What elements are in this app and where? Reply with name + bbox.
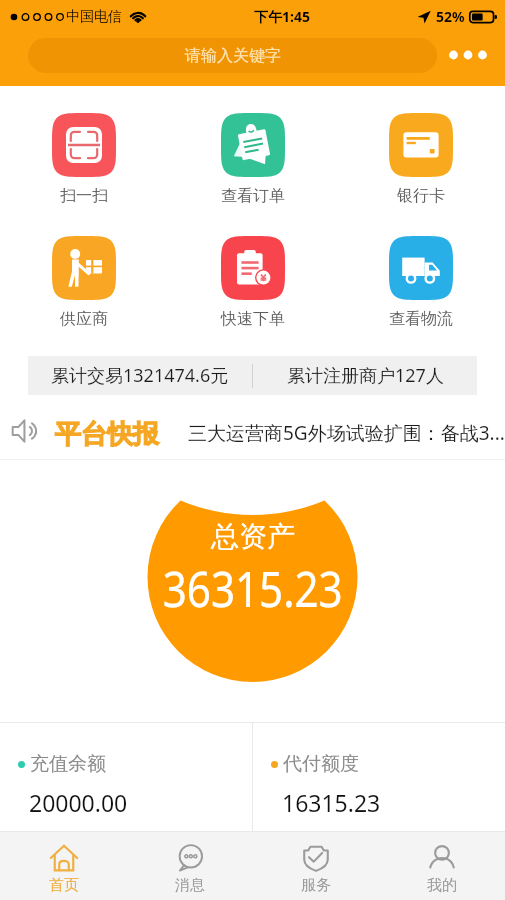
staticText: 下午1:45	[254, 7, 310, 26]
button[interactable]: 充值余额	[0, 723, 252, 831]
staticText: 服务	[301, 876, 331, 895]
staticText: 查看物流	[389, 309, 453, 329]
staticText: 36315.23	[163, 555, 343, 622]
staticText: 平台快报	[55, 418, 159, 451]
button[interactable]: 消息	[127, 832, 253, 900]
button[interactable]: 我的	[379, 832, 505, 900]
button[interactable]: 平台快报	[0, 403, 505, 459]
staticText: 三大运营商5G外场试验扩围：备战3...	[188, 420, 505, 446]
staticText: 查看订单	[221, 186, 285, 206]
button[interactable]	[371, 109, 471, 214]
staticText: 消息	[175, 876, 205, 895]
button[interactable]	[203, 109, 303, 214]
button[interactable]	[371, 232, 471, 337]
staticText: 充值余额	[30, 752, 106, 776]
staticText: 快速下单	[221, 309, 285, 329]
staticText: 代付额度	[283, 752, 359, 776]
staticText: 16315.23	[282, 787, 381, 818]
button[interactable]	[203, 232, 303, 337]
staticText: 银行卡	[397, 186, 445, 206]
staticText: 供应商	[60, 309, 108, 329]
button[interactable]: 服务	[253, 832, 379, 900]
staticText: 52%	[436, 7, 465, 26]
staticText: 我的	[427, 876, 457, 895]
staticText: 扫一扫	[60, 186, 108, 206]
staticText: 累计交易1321474.6元	[51, 363, 229, 388]
staticText: 首页	[49, 876, 79, 895]
staticText: 20000.00	[29, 787, 128, 818]
staticText: 中国电信	[66, 8, 122, 26]
staticText: 累计注册商户127人	[287, 363, 444, 388]
button[interactable]: 请输入关键字	[28, 38, 437, 73]
button[interactable]	[34, 232, 134, 337]
staticText: 总资产	[211, 519, 295, 554]
button[interactable]: 首页	[0, 832, 127, 900]
button[interactable]	[34, 109, 134, 214]
staticText: 请输入关键字	[185, 46, 281, 66]
button[interactable]: 代付额度	[253, 723, 505, 831]
button[interactable]: More options	[446, 33, 490, 77]
